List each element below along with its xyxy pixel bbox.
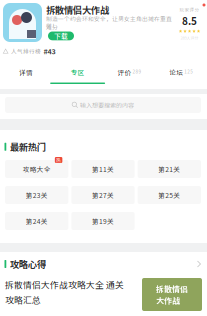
button[interactable]: 第19关	[71, 212, 135, 230]
staticText: 第24关	[26, 216, 48, 226]
staticText: #43	[43, 46, 55, 56]
staticText: 拆散情侣 大作战	[156, 283, 188, 306]
staticText: 8.5	[182, 13, 197, 28]
button[interactable]: 第25关	[138, 186, 201, 204]
button[interactable]: 拆散情侣大作战攻略大全 通关	[5, 278, 202, 311]
button[interactable]: 专区	[52, 58, 104, 89]
button[interactable]: 第24关	[5, 212, 68, 230]
staticText: 第21关	[158, 164, 180, 174]
staticText: 第19关	[92, 216, 114, 226]
staticText: 专区	[71, 67, 85, 77]
staticText: 第23关	[26, 190, 48, 200]
staticText: 289	[132, 68, 141, 75]
staticText: 攻略汇总	[5, 293, 41, 306]
staticText: 制造一个约会环和安全，让男女主角出摊在重直难分	[46, 14, 172, 31]
button[interactable]: 详情	[0, 58, 52, 89]
staticText: 最新热门	[10, 140, 46, 153]
staticText: 输入想要搜索的内容	[80, 101, 134, 109]
button[interactable]: 输入想要搜索的内容	[5, 97, 201, 113]
staticText: 详情	[19, 67, 33, 77]
staticText: 下载	[54, 31, 68, 41]
staticText: 第11关	[92, 164, 114, 174]
staticText: 289人评分	[180, 35, 198, 41]
button[interactable]: 论坛	[155, 58, 207, 89]
button[interactable]: 攻略心得	[4, 258, 201, 270]
staticText: 第27关	[92, 190, 114, 200]
button[interactable]: 评价	[103, 58, 155, 89]
button[interactable]: 第27关	[71, 186, 135, 204]
staticText: 玩家评分	[179, 6, 199, 13]
button[interactable]: 第23关	[5, 186, 68, 204]
button[interactable]: 第11关	[71, 160, 135, 178]
staticText: 125	[184, 68, 193, 75]
staticText: 攻略心得	[10, 257, 46, 271]
button[interactable]: 第21关	[138, 160, 201, 178]
staticText: 论坛	[169, 67, 183, 77]
button[interactable]: 攻略大全	[5, 160, 68, 178]
staticText: 拆散情侣大作战	[46, 3, 109, 16]
staticText: 评价	[117, 67, 131, 77]
staticText: 人气排行榜	[11, 47, 41, 55]
staticText: 热	[56, 156, 61, 163]
button[interactable]: 下载	[48, 31, 74, 40]
staticText: 学！	[46, 21, 58, 30]
staticText: 第25关	[158, 190, 180, 200]
staticText: 攻略大全	[23, 164, 51, 174]
staticText: 拆散情侣大作战攻略大全 通关	[5, 278, 124, 291]
